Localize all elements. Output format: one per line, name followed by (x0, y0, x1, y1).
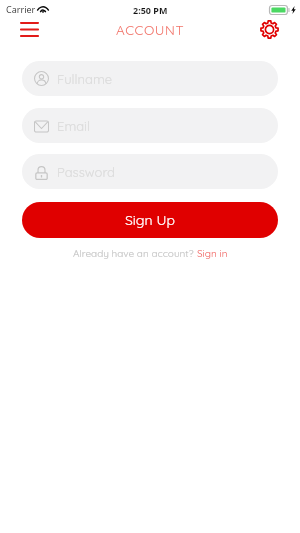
button[interactable]: Sign in (197, 247, 228, 260)
staticText: ACCOUNT (116, 21, 185, 38)
staticText: Carrier (6, 3, 36, 15)
staticText: Sign Up (125, 211, 175, 229)
staticText: Password (57, 164, 115, 180)
staticText: 2:50 PM (133, 4, 168, 16)
staticText: Email (57, 118, 90, 134)
button[interactable]: Settings (258, 18, 280, 40)
button[interactable]: Password (22, 154, 278, 189)
button[interactable]: Sign Up (22, 202, 278, 238)
button[interactable]: Email (22, 108, 278, 143)
button[interactable]: Menu (14, 17, 45, 41)
button[interactable]: Fullname (22, 61, 278, 96)
staticText: Sign in (197, 247, 228, 260)
staticText: Fullname (57, 71, 113, 87)
staticText: Already have an account? (73, 247, 197, 260)
